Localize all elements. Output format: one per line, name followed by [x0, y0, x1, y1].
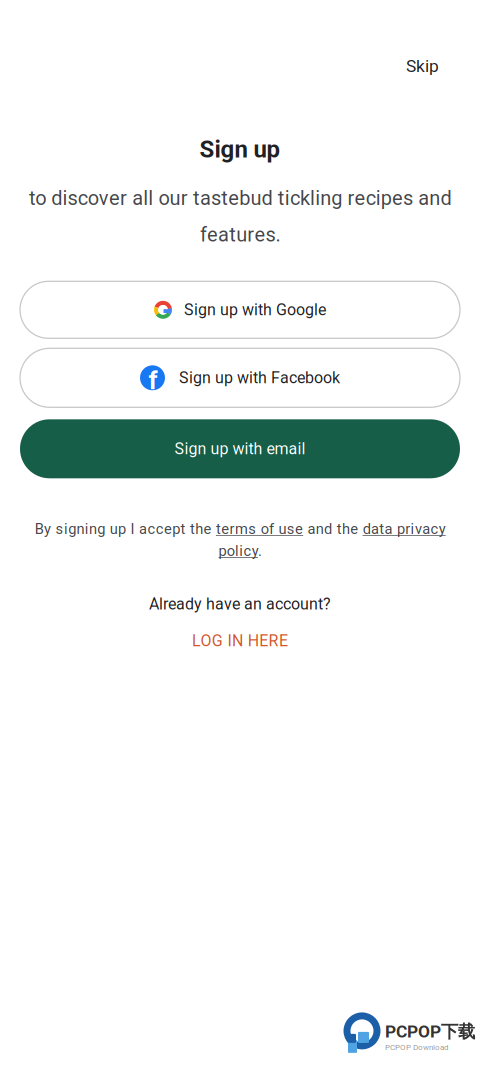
- staticText: Sign up: [199, 135, 280, 163]
- staticText: Skip: [406, 56, 439, 76]
- staticText: LOG IN HERE: [192, 631, 288, 650]
- staticText: PCPOP Download: [385, 1043, 449, 1052]
- staticText: Sign up with Google: [184, 300, 326, 319]
- staticText: Sign up with email: [174, 439, 305, 458]
- staticText: Sign up with Facebook: [179, 368, 340, 387]
- button[interactable]: f: [20, 348, 460, 407]
- button[interactable]: LOG IN HERE: [174, 621, 306, 660]
- staticText: to discover all our tastebud tickling re…: [29, 186, 451, 246]
- staticText: By signing up I accept the terms of use …: [34, 520, 445, 560]
- button[interactable]: Skip: [386, 44, 459, 88]
- staticText: Already have an account?: [149, 595, 331, 613]
- staticText: f: [148, 366, 157, 395]
- button[interactable]: Sign up with email: [20, 419, 460, 478]
- button[interactable]: Sign up with Google: [20, 281, 460, 338]
- staticText: PCPOP下载: [385, 1021, 475, 1043]
